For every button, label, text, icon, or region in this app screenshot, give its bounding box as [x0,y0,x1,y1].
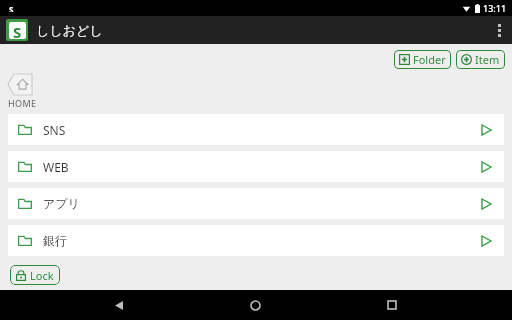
staticText: 銀行 [43,233,67,248]
button[interactable]: Home [8,74,34,95]
staticText: HOME [8,97,37,109]
staticText: Lock [30,268,54,283]
staticText: S [9,4,14,12]
button[interactable]: Item [456,50,505,69]
button[interactable]: Recent apps [375,290,409,320]
button[interactable]: More options [486,16,512,44]
button[interactable]: Lock [10,265,60,285]
button[interactable]: WEB [8,151,504,182]
staticText: S [13,22,22,39]
button[interactable]: Open [478,196,494,212]
button[interactable]: Folder [394,50,451,69]
button[interactable]: Open [478,233,494,249]
staticText: アプリ [43,196,80,211]
button[interactable]: Back [102,290,136,320]
button[interactable]: SNS [8,114,504,145]
button[interactable]: Open [478,159,494,175]
staticText: Folder [413,52,446,67]
staticText: 13:11 [483,2,507,14]
button[interactable]: Open [478,122,494,138]
staticText: WEB [43,159,69,175]
staticText: ししおどし [36,22,103,38]
button[interactable]: アプリ [8,188,504,219]
staticText: Item [475,52,500,67]
staticText: SNS [43,122,66,138]
button[interactable]: Home [238,290,272,320]
button[interactable]: 銀行 [8,225,504,256]
